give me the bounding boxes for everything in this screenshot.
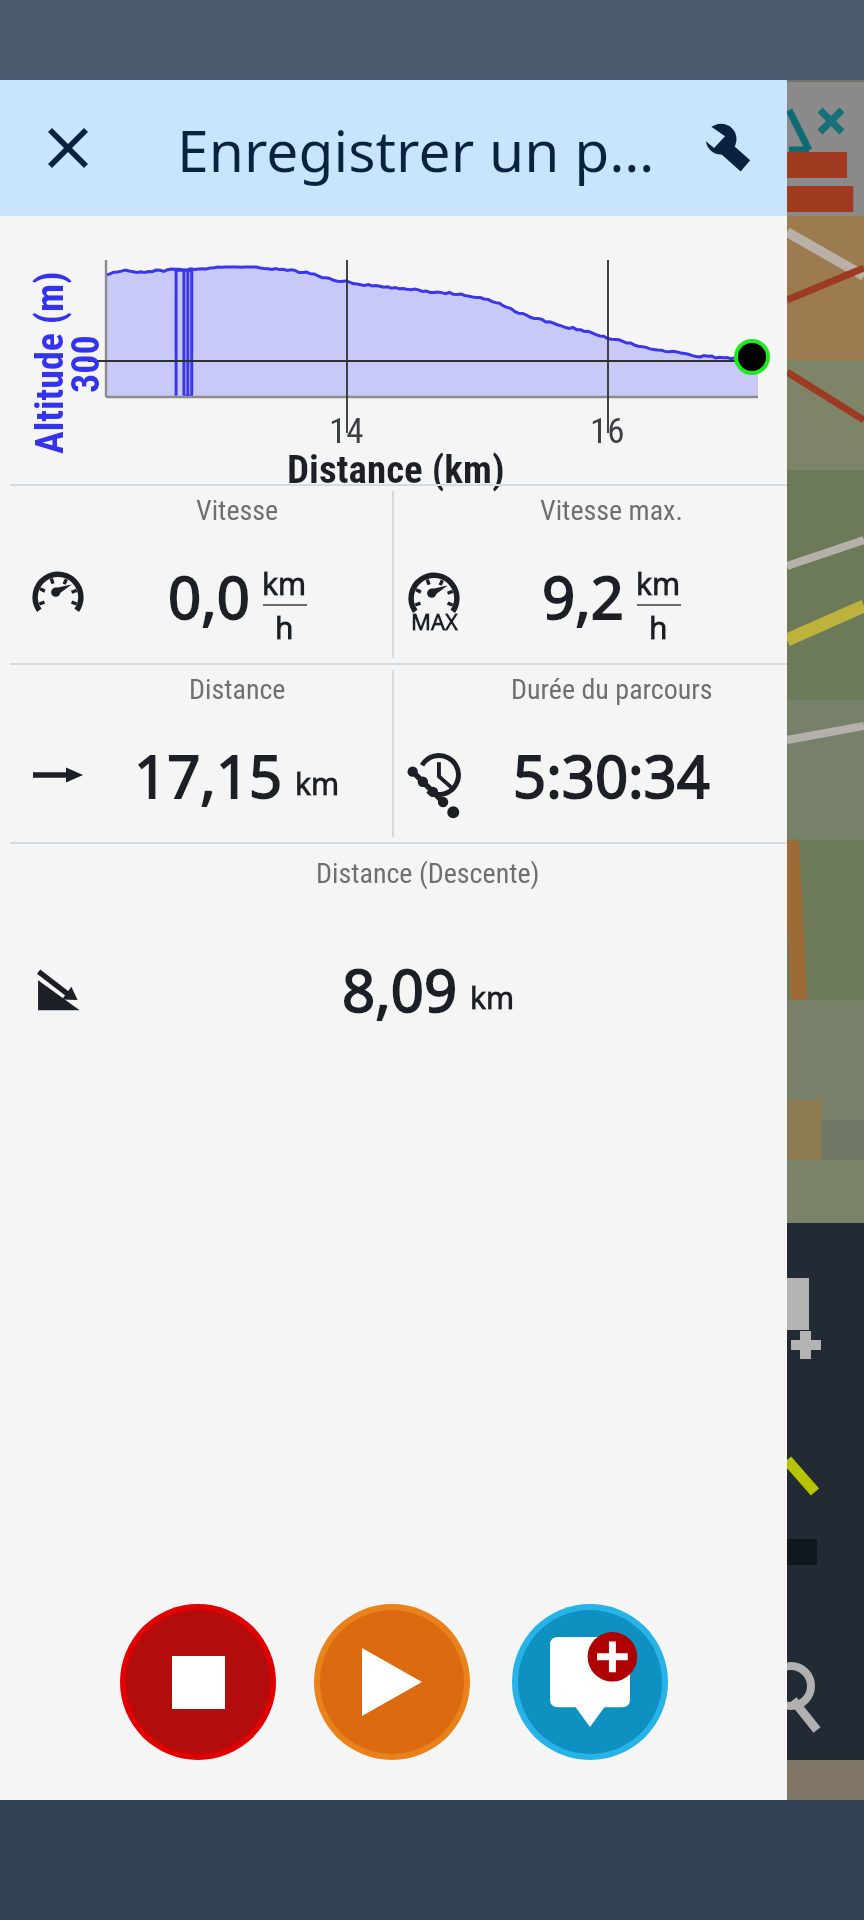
button[interactable]: Distance (Descente) — [0, 844, 787, 1060]
staticText: MAX — [411, 606, 458, 636]
button[interactable]: Resume recording — [314, 1604, 470, 1760]
staticText: km — [295, 763, 340, 804]
staticText: 0,0 — [168, 557, 250, 636]
button[interactable]: Stop recording — [120, 1604, 276, 1760]
button[interactable]: Add waypoint — [512, 1604, 668, 1760]
staticText: Enregistrer un p… — [177, 111, 655, 189]
staticText: 5:30:34 — [513, 736, 710, 815]
button[interactable]: Vitesse max. — [394, 486, 787, 663]
button[interactable]: Close — [26, 106, 110, 190]
button[interactable]: Distance — [0, 665, 392, 842]
staticText: 14 — [329, 411, 364, 452]
staticText: 16 — [590, 411, 625, 452]
staticText: Durée du parcours — [511, 673, 713, 706]
staticText: Vitesse max. — [540, 494, 683, 527]
staticText: 17,15 — [134, 736, 283, 815]
button[interactable]: Vitesse — [0, 486, 392, 663]
button[interactable]: Settings — [683, 106, 767, 190]
staticText: Distance (Descente) — [316, 857, 540, 890]
staticText: km — [262, 563, 307, 604]
staticText: h — [649, 607, 668, 648]
staticText: Distance — [189, 673, 286, 706]
staticText: Distance (km) — [287, 447, 505, 493]
staticText: km — [636, 563, 681, 604]
button[interactable]: Durée du parcours — [394, 665, 787, 842]
staticText: 300 — [64, 335, 109, 393]
staticText: Vitesse — [196, 494, 279, 527]
staticText: h — [275, 607, 294, 648]
staticText: Altitude (m) — [28, 271, 73, 454]
staticText: 8,09 — [342, 950, 458, 1029]
staticText: 9,2 — [542, 557, 624, 636]
staticText: km — [470, 977, 515, 1018]
